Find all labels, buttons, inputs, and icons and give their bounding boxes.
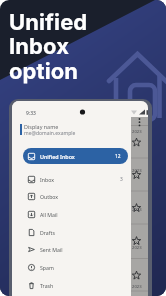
staticText: 12 <box>115 153 121 160</box>
staticText: Sent Mail <box>40 246 63 253</box>
staticText: Unified <box>9 9 88 36</box>
staticText: All Mail <box>40 211 58 218</box>
button[interactable]: Trash <box>23 277 131 294</box>
button[interactable]: Drafts <box>23 224 131 241</box>
staticText: Outbox <box>40 193 59 200</box>
button[interactable]: Spam <box>23 259 131 276</box>
button[interactable]: Outbox <box>23 188 131 205</box>
staticText: 2023 <box>132 207 142 213</box>
staticText: Drafts <box>40 229 55 236</box>
button[interactable]: Sent Mail <box>23 241 131 258</box>
staticText: 2023 <box>132 245 142 251</box>
staticText: 2023 <box>132 168 142 174</box>
staticText: Unified Inbox <box>40 153 75 160</box>
button[interactable]: Unified Inbox <box>23 148 128 164</box>
staticText: Inbox <box>40 176 54 183</box>
staticText: option <box>9 58 79 85</box>
staticText: 2023 <box>132 284 142 290</box>
button[interactable]: All Mail <box>23 206 131 223</box>
staticText: Inbox <box>9 33 70 60</box>
staticText: 3 <box>120 176 123 183</box>
button[interactable]: Inbox <box>23 171 131 188</box>
staticText: Trash <box>40 282 54 289</box>
staticText: 9:33 <box>26 110 36 117</box>
staticText: me@domain.example <box>24 130 76 137</box>
staticText: Spam <box>40 264 54 271</box>
staticText: 2023 <box>132 129 142 135</box>
staticText: Display name <box>24 123 59 130</box>
